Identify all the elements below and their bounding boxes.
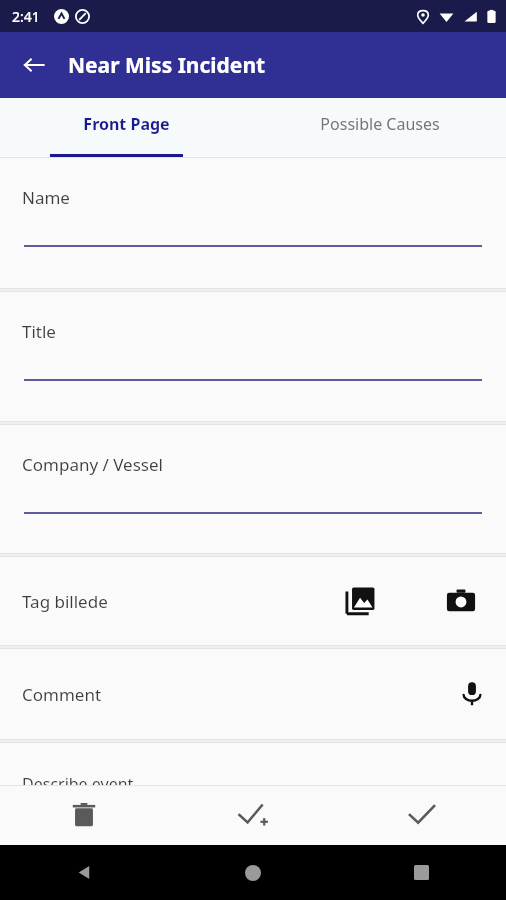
button[interactable]: Home (168, 845, 337, 900)
button[interactable]: Front Page (0, 98, 253, 158)
button[interactable]: Company / Vessel (0, 425, 506, 553)
staticText: Describe event (22, 773, 134, 785)
staticText: Company / Vessel (22, 453, 163, 476)
staticText: Possible Causes (320, 113, 440, 135)
button[interactable]: Back (10, 41, 58, 89)
button[interactable]: Title (0, 292, 506, 421)
button[interactable]: Possible Causes (253, 98, 506, 158)
staticText: Tag billede (22, 590, 108, 613)
button[interactable]: Voice input (450, 672, 494, 716)
button[interactable]: Delete (0, 785, 168, 845)
staticText: Front Page (83, 113, 170, 135)
button[interactable]: Save and add another (168, 785, 337, 845)
staticText: Near Miss Incident (68, 51, 266, 80)
button[interactable]: Back (0, 845, 168, 900)
button[interactable]: Take photo (438, 578, 484, 624)
staticText: 2:41 (12, 7, 40, 26)
button[interactable]: Recent apps (337, 845, 506, 900)
staticText: Title (22, 320, 56, 343)
button[interactable]: Choose from gallery (338, 578, 384, 624)
button[interactable]: Save (337, 785, 506, 845)
button[interactable]: Name (0, 158, 506, 288)
staticText: Name (22, 186, 70, 209)
staticText: Comment (22, 683, 102, 706)
